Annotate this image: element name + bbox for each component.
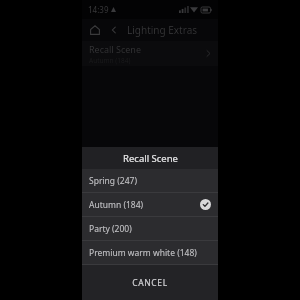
button[interactable]: Party (200): [82, 217, 218, 240]
staticText: Lighting Extras: [127, 23, 198, 37]
button[interactable]: Premium warm white (148): [82, 241, 218, 264]
staticText: Autumn (184): [89, 199, 200, 211]
button[interactable]: Autumn (184): [82, 193, 218, 216]
button[interactable]: Back: [107, 23, 121, 37]
button[interactable]: Spring (247): [82, 169, 218, 192]
staticText: 14:39: [88, 4, 109, 15]
staticText: Premium warm white (148): [89, 247, 211, 259]
staticText: Party (200): [89, 223, 211, 235]
staticText: CANCEL: [132, 277, 168, 289]
staticText: Recall Scene: [89, 43, 142, 55]
button[interactable]: Recall Scene: [82, 41, 218, 66]
staticText: Recall Scene: [123, 152, 178, 165]
button[interactable]: Home: [87, 22, 103, 38]
button[interactable]: CANCEL: [82, 265, 218, 300]
staticText: Spring (247): [89, 175, 211, 187]
staticText: Autumn (184): [89, 56, 131, 65]
